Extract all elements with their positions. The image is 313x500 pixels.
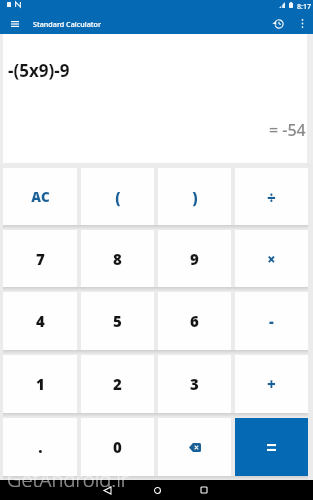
staticText: ( [115,187,121,207]
button[interactable]: 5 [81,292,154,350]
staticText: 9 [190,249,199,269]
button[interactable]: 8 [81,230,154,287]
button[interactable]: - [235,292,308,350]
staticText: 2 [113,374,122,394]
staticText: -(5x9)-9 [8,59,70,82]
staticText: 5 [113,311,122,331]
button[interactable]: + [235,355,308,413]
button[interactable] [235,418,308,476]
button[interactable]: ÷ [235,168,308,225]
button[interactable]: 7 [3,230,77,287]
button[interactable]: -(5x9)-9 [3,34,307,163]
button[interactable]: More options [291,13,313,34]
staticText: ) [192,187,198,207]
button[interactable]: ) [158,168,231,225]
staticText: GetAndroid.ir [7,466,129,493]
button[interactable]: . [3,418,77,476]
button[interactable]: Home [147,480,167,500]
staticText: 4 [36,311,45,331]
staticText: 6 [190,311,199,331]
staticText: Standard Calculator [33,19,102,29]
button[interactable]: 4 [3,292,77,350]
button[interactable]: Open navigation menu [0,13,29,34]
button[interactable]: 2 [81,355,154,413]
staticText: ÷ [267,187,276,207]
button[interactable]: Back [97,480,117,500]
staticText: . [38,437,43,457]
staticText: 8:17 [297,2,311,12]
button[interactable]: 6 [158,292,231,350]
other: Backspace [158,418,231,476]
staticText: = -54 [269,119,306,141]
button[interactable]: History [266,13,291,34]
staticText: 7 [36,249,45,269]
staticText: + [267,374,276,394]
button[interactable]: 1 [3,355,77,413]
button[interactable]: 3 [158,355,231,413]
button[interactable]: 9 [158,230,231,287]
button[interactable]: Backspace [158,418,231,476]
button[interactable]: 0 [81,418,154,476]
button[interactable]: × [235,230,308,287]
button[interactable]: AC [3,168,77,225]
staticText: 1 [36,374,45,394]
staticText: AC [31,188,50,206]
staticText: 0 [113,437,122,457]
button[interactable]: Recent apps [194,480,214,500]
staticText: 8 [113,249,122,269]
staticText: - [269,311,274,331]
staticText: × [267,249,276,269]
button[interactable]: ( [81,168,154,225]
staticText: 3 [190,374,199,394]
